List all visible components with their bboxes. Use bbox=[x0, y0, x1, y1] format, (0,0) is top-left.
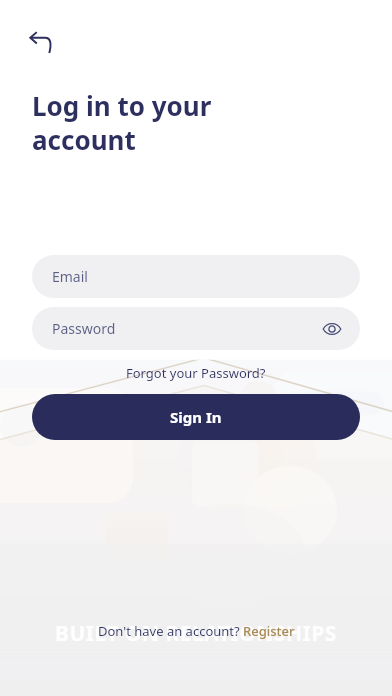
button[interactable]: Password bbox=[32, 307, 360, 350]
button[interactable]: Don't have an account? Register bbox=[90, 618, 303, 644]
staticText: Don't have an account? Register bbox=[98, 622, 295, 640]
staticText: Log in to your account bbox=[32, 88, 212, 157]
button[interactable]: Email bbox=[32, 255, 360, 298]
staticText: Sign In bbox=[170, 407, 222, 427]
staticText: Forgot your Password? bbox=[126, 364, 266, 382]
button[interactable]: Forgot your Password? bbox=[118, 362, 274, 384]
staticText: Email bbox=[52, 267, 88, 286]
button[interactable]: Sign In bbox=[32, 394, 360, 440]
staticText: Password bbox=[52, 319, 116, 338]
button[interactable]: Show password bbox=[316, 313, 348, 345]
staticText: BUILT ON RELATIONSHIPS bbox=[55, 619, 337, 648]
button[interactable]: Back bbox=[20, 20, 64, 64]
